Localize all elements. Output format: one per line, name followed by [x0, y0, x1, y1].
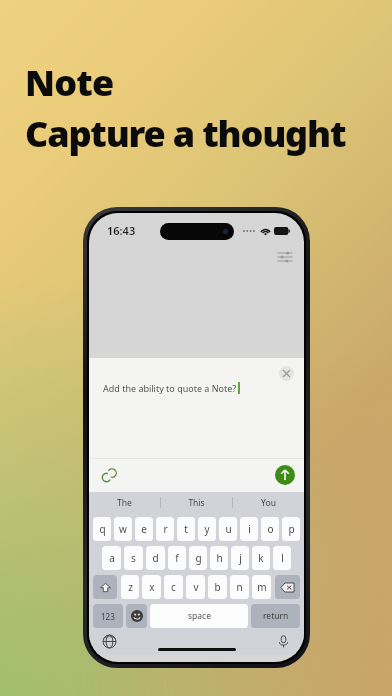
button[interactable]: Emoji: [126, 604, 147, 628]
button[interactable]: q: [93, 517, 111, 541]
staticText: r: [163, 522, 168, 536]
staticText: x: [149, 580, 155, 594]
staticText: Capture a thought: [25, 109, 346, 158]
button[interactable]: z: [121, 575, 139, 599]
staticText: k: [258, 551, 264, 565]
button[interactable]: i: [240, 517, 258, 541]
button[interactable]: e: [135, 517, 153, 541]
button[interactable]: f: [168, 546, 186, 570]
button[interactable]: o: [261, 517, 279, 541]
button[interactable]: g: [189, 546, 207, 570]
button[interactable]: p: [282, 517, 300, 541]
staticText: n: [236, 580, 243, 594]
button[interactable]: k: [252, 546, 270, 570]
button[interactable]: u: [219, 517, 237, 541]
button[interactable]: y: [198, 517, 216, 541]
button[interactable]: The: [89, 497, 160, 509]
staticText: g: [195, 551, 202, 565]
button[interactable]: Close: [279, 366, 294, 381]
staticText: s: [131, 551, 136, 565]
staticText: Note: [25, 58, 114, 107]
staticText: f: [175, 551, 179, 565]
button[interactable]: Attach link: [99, 465, 119, 485]
button[interactable]: n: [230, 575, 249, 599]
button[interactable]: l: [273, 546, 291, 570]
staticText: a: [109, 551, 115, 565]
staticText: j: [239, 551, 242, 565]
button[interactable]: Dictate: [276, 634, 291, 649]
staticText: You: [261, 497, 276, 509]
staticText: o: [267, 522, 274, 536]
staticText: The: [117, 497, 132, 509]
button[interactable]: Send: [275, 465, 295, 485]
staticText: w: [119, 522, 127, 536]
staticText: c: [171, 580, 176, 594]
button[interactable]: w: [114, 517, 132, 541]
button[interactable]: c: [164, 575, 183, 599]
button[interactable]: x: [142, 575, 161, 599]
staticText: v: [193, 580, 199, 594]
staticText: e: [141, 522, 147, 536]
staticText: p: [288, 522, 295, 536]
button[interactable]: You: [233, 497, 304, 509]
staticText: space: [188, 610, 211, 622]
button[interactable]: This: [161, 497, 232, 509]
staticText: b: [214, 580, 221, 594]
staticText: 123: [101, 611, 115, 622]
staticText: This: [188, 497, 205, 509]
button[interactable]: Delete: [275, 575, 300, 599]
staticText: y: [204, 522, 210, 536]
button[interactable]: Settings: [276, 248, 294, 266]
staticText: 16:43: [107, 223, 136, 238]
staticText: return: [263, 610, 289, 622]
staticText: l: [281, 551, 284, 565]
button[interactable]: Change keyboard: [102, 634, 117, 649]
button[interactable]: t: [177, 517, 195, 541]
button[interactable]: b: [208, 575, 227, 599]
staticText: q: [99, 522, 106, 536]
staticText: Add the ability to quote a Note?: [103, 382, 237, 394]
staticText: u: [225, 522, 232, 536]
staticText: i: [248, 522, 251, 536]
button[interactable]: d: [146, 546, 165, 570]
button[interactable]: s: [124, 546, 143, 570]
button[interactable]: a: [102, 546, 121, 570]
button[interactable]: j: [231, 546, 249, 570]
button[interactable]: return: [251, 604, 300, 628]
staticText: h: [216, 551, 223, 565]
button[interactable]: v: [186, 575, 205, 599]
staticText: t: [184, 522, 188, 536]
button[interactable]: 123: [93, 604, 123, 628]
staticText: z: [128, 580, 133, 594]
button[interactable]: m: [252, 575, 271, 599]
staticText: m: [257, 580, 267, 594]
button[interactable]: space: [150, 604, 248, 628]
button[interactable]: r: [156, 517, 174, 541]
button[interactable]: Shift: [93, 575, 117, 599]
staticText: d: [152, 551, 159, 565]
button[interactable]: h: [210, 546, 228, 570]
